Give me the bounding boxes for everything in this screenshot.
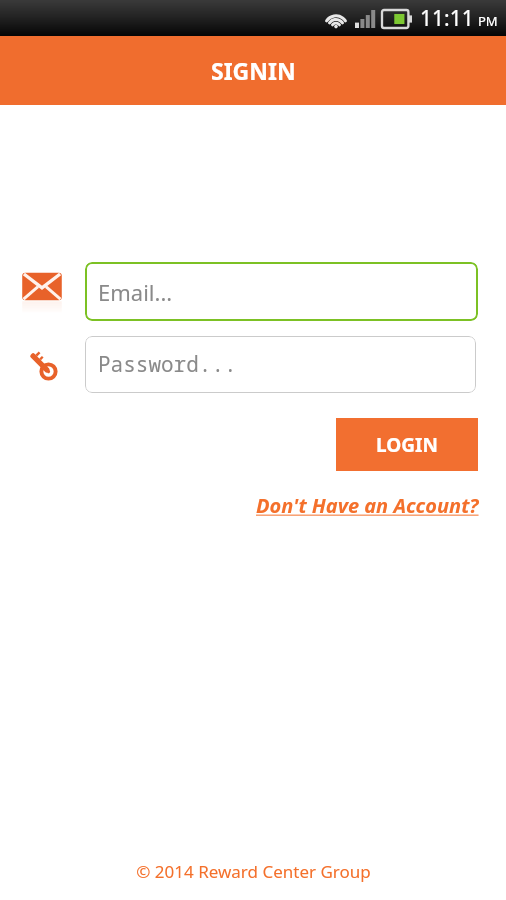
staticText: SIGNIN xyxy=(211,55,296,86)
button[interactable]: Password... xyxy=(85,336,476,393)
button[interactable]: Don't Have an Account? xyxy=(254,491,481,520)
staticText: LOGIN xyxy=(376,432,438,458)
staticText: © 2014 Reward Center Group xyxy=(136,860,371,883)
staticText: Don't Have an Account? xyxy=(256,492,479,519)
staticText: Email... xyxy=(98,277,173,307)
staticText: 11:11 xyxy=(420,4,474,33)
button[interactable]: Email... xyxy=(85,262,478,321)
other: Password xyxy=(19,342,65,388)
button[interactable]: LOGIN xyxy=(336,418,478,471)
staticText: Password... xyxy=(98,350,237,379)
staticText: PM xyxy=(478,12,498,30)
other: Email xyxy=(19,269,65,315)
